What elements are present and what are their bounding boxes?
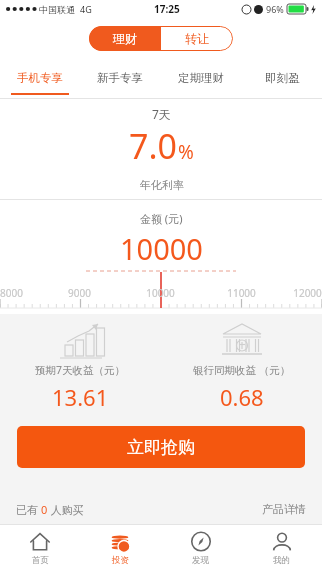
staticText: 新手专享 <box>97 71 143 85</box>
staticText: 产品详情 <box>262 502 306 516</box>
staticText: 手机专享 <box>17 71 63 85</box>
staticText: 定期理财 <box>178 71 224 85</box>
staticText: % <box>178 139 194 165</box>
staticText: 11000 <box>227 286 256 300</box>
button[interactable]: 理财 <box>89 26 161 51</box>
staticText: 金额 (元) <box>140 211 183 226</box>
staticText: 7天 <box>152 106 171 122</box>
staticText: 96% <box>266 3 284 15</box>
staticText: 10000 <box>120 229 203 268</box>
staticText: 我的 <box>273 555 290 566</box>
staticText: 投资 <box>112 555 129 566</box>
button[interactable]: 转让 <box>161 26 233 51</box>
button[interactable]: 产品详情 <box>262 502 306 516</box>
staticText: 9000 <box>68 286 91 300</box>
button[interactable]: 首页 <box>0 525 80 572</box>
staticText: 10000 <box>146 286 175 300</box>
staticText: 理财 <box>113 31 137 46</box>
button[interactable]: 即刻盈 <box>241 58 322 98</box>
staticText: 人购买 <box>48 502 84 517</box>
staticText: 预期7天收益（元） <box>35 363 126 377</box>
staticText: 银行同期收益 （元） <box>193 363 291 377</box>
staticText: 首页 <box>32 555 49 566</box>
staticText: 7.0 <box>129 123 178 169</box>
button[interactable]: 新手专享 <box>80 58 160 98</box>
button[interactable]: 手机专享 <box>0 58 80 98</box>
button[interactable]: 定期理财 <box>160 58 241 98</box>
staticText: 年化利率 <box>140 178 184 192</box>
staticText: 转让 <box>185 31 209 46</box>
staticText: 发现 <box>192 555 209 566</box>
staticText: 13.61 <box>52 382 109 412</box>
staticText: 已有 <box>16 502 41 517</box>
staticText: 12000 <box>293 286 322 300</box>
staticText: 即刻盈 <box>265 71 300 85</box>
staticText: 8000 <box>0 286 23 300</box>
staticText: 中国联通 <box>39 4 75 15</box>
button[interactable]: 我的 <box>241 525 322 572</box>
staticText: 立即抢购 <box>127 437 195 458</box>
button[interactable]: 立即抢购 <box>17 426 305 468</box>
button[interactable]: 投资 <box>80 525 160 572</box>
staticText: 17:25 <box>154 2 180 16</box>
staticText: 0 <box>41 502 48 517</box>
button[interactable]: 发现 <box>160 525 241 572</box>
staticText: 4G <box>80 3 92 15</box>
staticText: 0.68 <box>220 382 264 412</box>
